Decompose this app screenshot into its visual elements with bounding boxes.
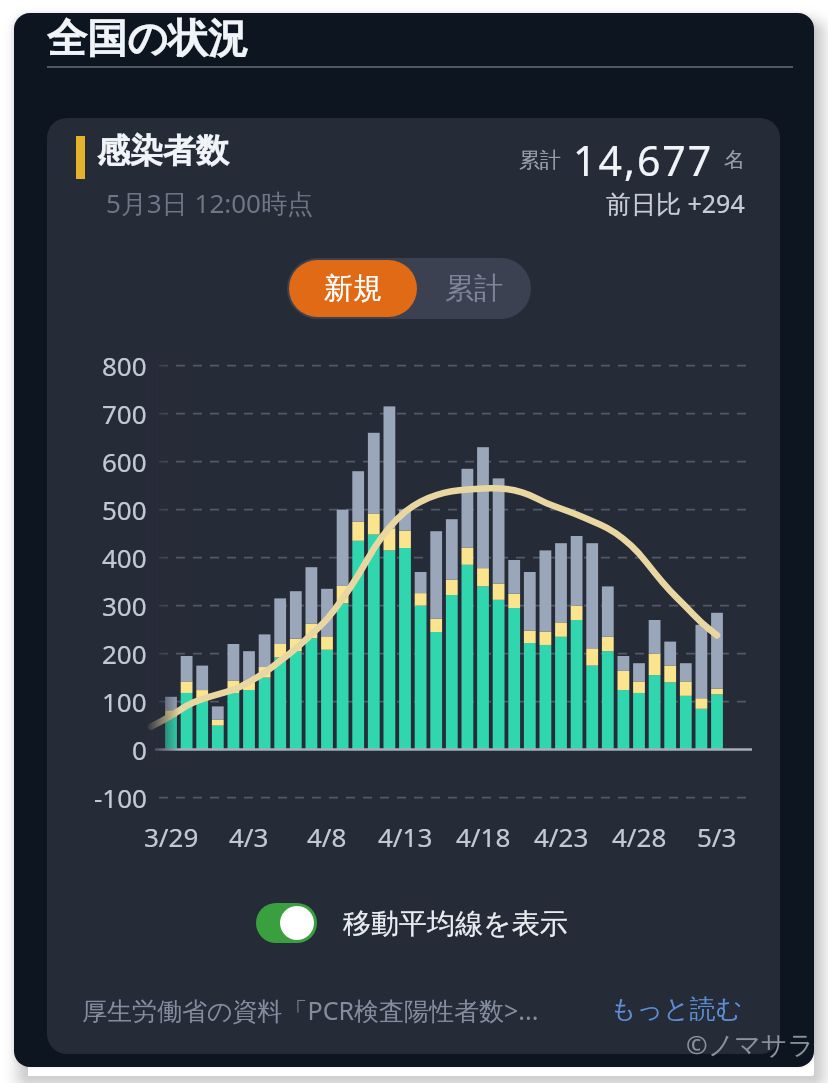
staticText: 300 — [102, 588, 147, 623]
staticText: 4/8 — [307, 819, 347, 854]
staticText: 0 — [132, 732, 147, 767]
staticText: 500 — [102, 492, 147, 527]
staticText: 14,677 — [573, 132, 714, 188]
staticText: 4/28 — [612, 819, 667, 854]
staticText: 新規 — [324, 270, 382, 307]
staticText: 全国の状況 — [47, 13, 248, 63]
staticText: 5/3 — [697, 819, 737, 854]
staticText: 累計 — [519, 147, 561, 173]
staticText: 4/13 — [378, 819, 433, 854]
staticText: 700 — [102, 396, 147, 431]
staticText: 累計 — [445, 270, 503, 307]
button[interactable]: 新規 — [289, 260, 417, 317]
staticText: 400 — [102, 540, 147, 575]
staticText: 200 — [102, 636, 147, 671]
button[interactable]: もっと読む — [610, 993, 743, 1026]
staticText: 感染者数 — [97, 130, 229, 172]
staticText: 3/29 — [144, 819, 199, 854]
staticText: 600 — [102, 444, 147, 479]
staticText: 4/18 — [456, 819, 511, 854]
staticText: -100 — [94, 780, 147, 815]
staticText: 移動平均線を表示 — [343, 906, 568, 941]
button[interactable]: 移動平均線を表示 — [256, 903, 568, 943]
staticText: 100 — [102, 684, 147, 719]
staticText: 800 — [102, 348, 147, 383]
staticText: 前日比 +294 — [606, 186, 745, 220]
button[interactable]: 累計 — [417, 258, 531, 319]
staticText: 4/23 — [534, 819, 589, 854]
staticText: 4/3 — [229, 819, 269, 854]
staticText: 厚生労働省の資料「PCR検査陽性者数>... — [82, 993, 539, 1027]
staticText: ©ノマサラ — [686, 1026, 814, 1062]
staticText: 5月3日 12:00時点 — [106, 185, 313, 221]
staticText: 名 — [724, 147, 745, 173]
